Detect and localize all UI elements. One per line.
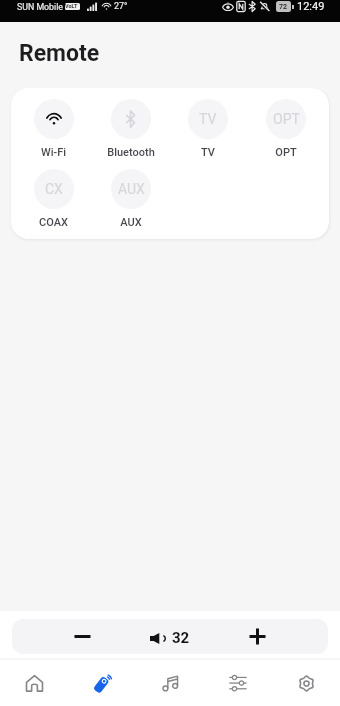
staticText: 12:49: [297, 0, 325, 13]
button[interactable]: Volume up: [188, 619, 328, 654]
staticText: TV: [201, 146, 215, 159]
staticText: Wi-Fi: [41, 146, 66, 159]
button[interactable]: Volume down: [12, 619, 152, 654]
staticText: Bluetooth: [107, 146, 155, 159]
button[interactable]: Equalizer: [204, 660, 272, 706]
staticText: TV: [199, 111, 217, 127]
button[interactable]: Settings: [272, 660, 340, 706]
button[interactable]: CX: [15, 169, 92, 229]
staticText: 32: [172, 629, 190, 647]
button[interactable]: OPT: [247, 99, 325, 159]
staticText: AUX: [120, 216, 142, 229]
staticText: AUX: [118, 181, 145, 197]
staticText: 72: [279, 3, 288, 11]
staticText: Remote: [19, 40, 100, 67]
button[interactable]: 32: [140, 619, 200, 654]
button[interactable]: Home: [0, 660, 68, 706]
button[interactable]: TV: [169, 99, 247, 159]
button[interactable]: AUX: [92, 169, 170, 229]
staticText: OPT: [273, 111, 300, 127]
button[interactable]: Bluetooth: [92, 99, 169, 159]
staticText: CX: [45, 181, 63, 197]
staticText: 27°: [114, 1, 128, 12]
button[interactable]: Remote: [68, 660, 136, 706]
staticText: COAX: [39, 216, 68, 229]
button[interactable]: Wi-Fi: [15, 99, 92, 159]
staticText: VoLTE: [65, 3, 80, 10]
button[interactable]: Music: [136, 660, 204, 706]
staticText: OPT: [275, 146, 297, 159]
staticText: SUN Mobile: [17, 2, 63, 12]
